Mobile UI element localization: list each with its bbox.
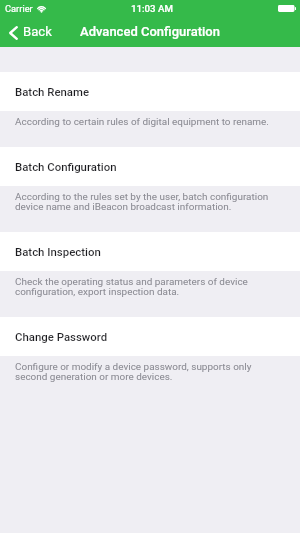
- button[interactable]: Batch Configuration: [0, 147, 300, 186]
- staticText: Batch Rename: [15, 85, 90, 98]
- staticText: Batch Configuration: [15, 160, 117, 173]
- staticText: Back: [23, 24, 52, 39]
- staticText: Advanced Configuration: [80, 24, 220, 39]
- button[interactable]: Back: [0, 16, 60, 47]
- staticText: 11:03 AM: [131, 3, 173, 14]
- staticText: Check the operating status and parameter…: [15, 277, 284, 297]
- staticText: Batch Inspection: [15, 245, 101, 258]
- staticText: Carrier: [5, 3, 33, 14]
- staticText: According to the rules set by the user, …: [15, 192, 284, 212]
- staticText: Change Password: [15, 330, 108, 343]
- button[interactable]: Change Password: [0, 317, 300, 356]
- staticText: Configure or modify a device password, s…: [15, 362, 284, 382]
- staticText: According to certain rules of digital eq…: [15, 117, 269, 127]
- button[interactable]: Batch Inspection: [0, 232, 300, 271]
- button[interactable]: Batch Rename: [0, 72, 300, 111]
